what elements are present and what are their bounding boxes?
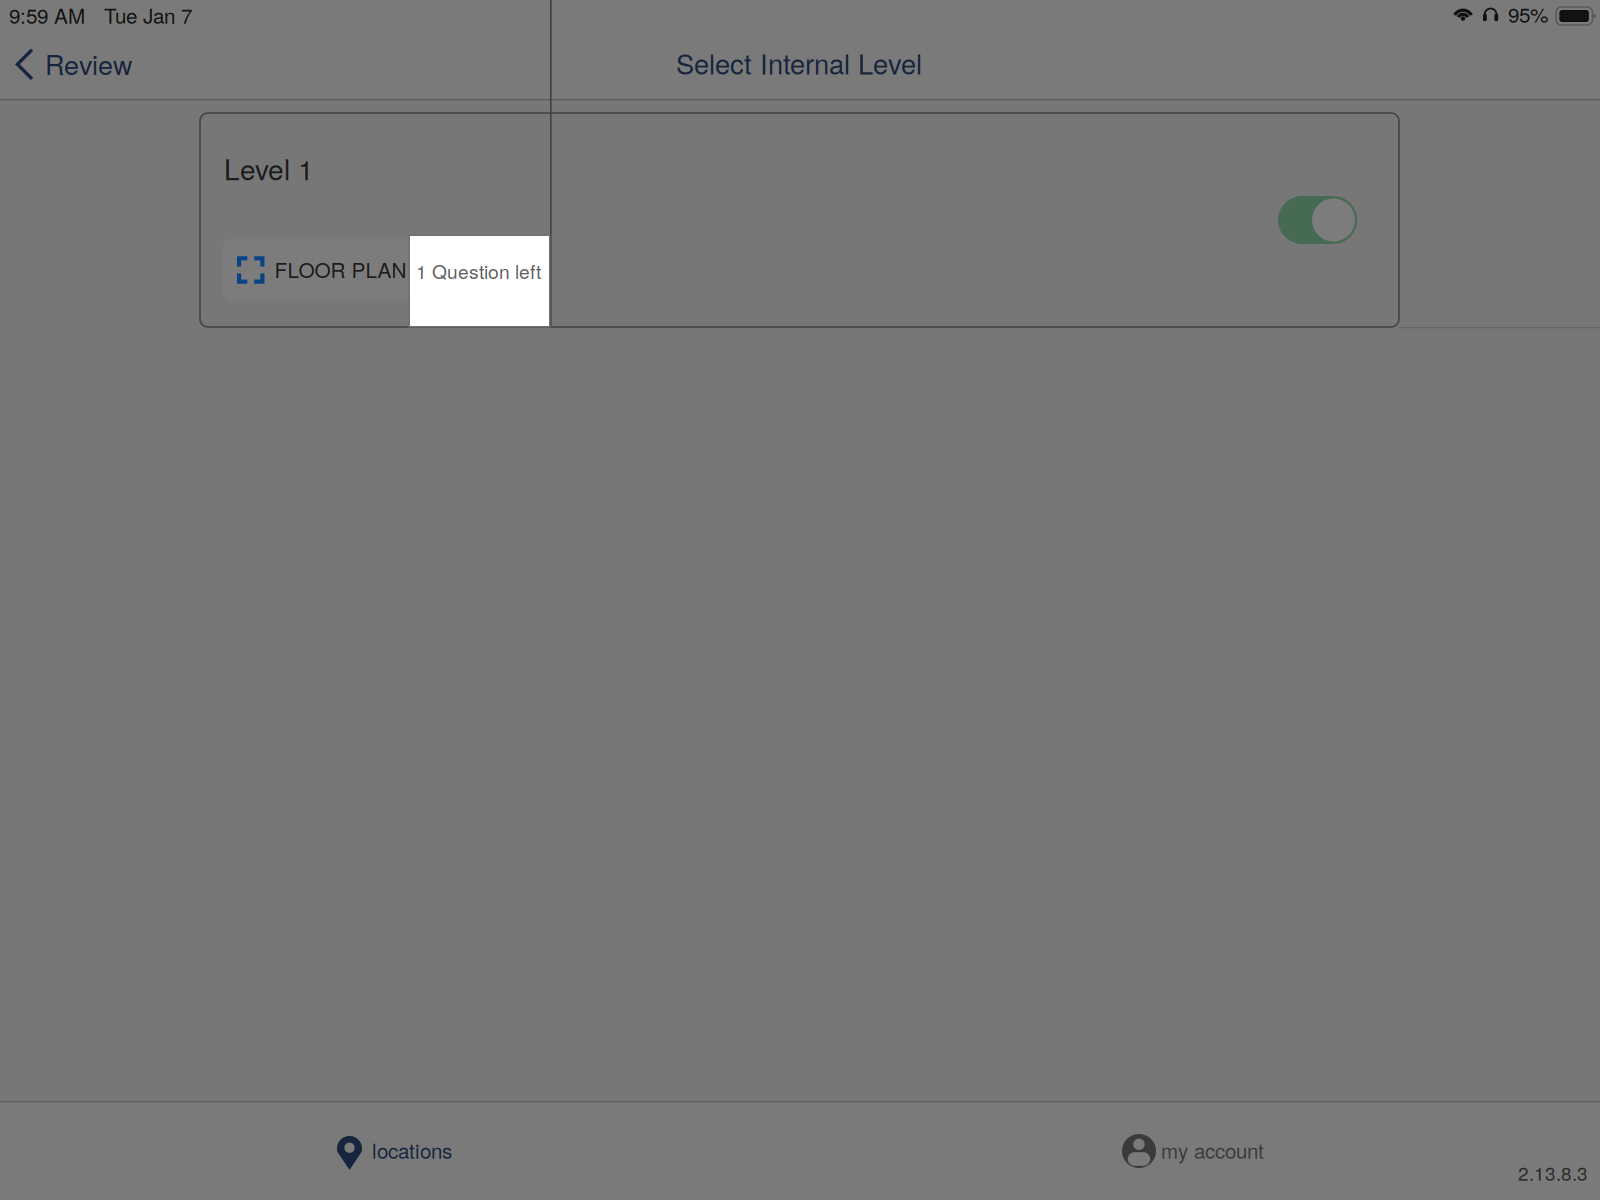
staticText: 2.13.8.3	[1518, 1159, 1588, 1186]
staticText: Tue Jan 7	[104, 0, 192, 30]
staticText: my account	[1161, 1135, 1264, 1165]
button[interactable]: Level 1 included	[1278, 196, 1357, 244]
staticText: Select Internal Level	[676, 43, 922, 82]
button[interactable]: my account	[800, 1101, 1600, 1200]
staticText: locations	[372, 1135, 452, 1165]
button[interactable]: FLOOR PLAN	[223, 239, 427, 301]
staticText: Review	[45, 44, 132, 83]
staticText: Level 1	[224, 148, 314, 188]
button[interactable]: locations	[0, 1101, 800, 1200]
staticText: 1 Question left	[416, 257, 541, 284]
button[interactable]: Back to Review	[1, 33, 146, 96]
staticText: 9:59 AM	[9, 0, 85, 30]
staticText: 95%	[1508, 0, 1548, 29]
staticText: FLOOR PLAN	[274, 254, 406, 284]
